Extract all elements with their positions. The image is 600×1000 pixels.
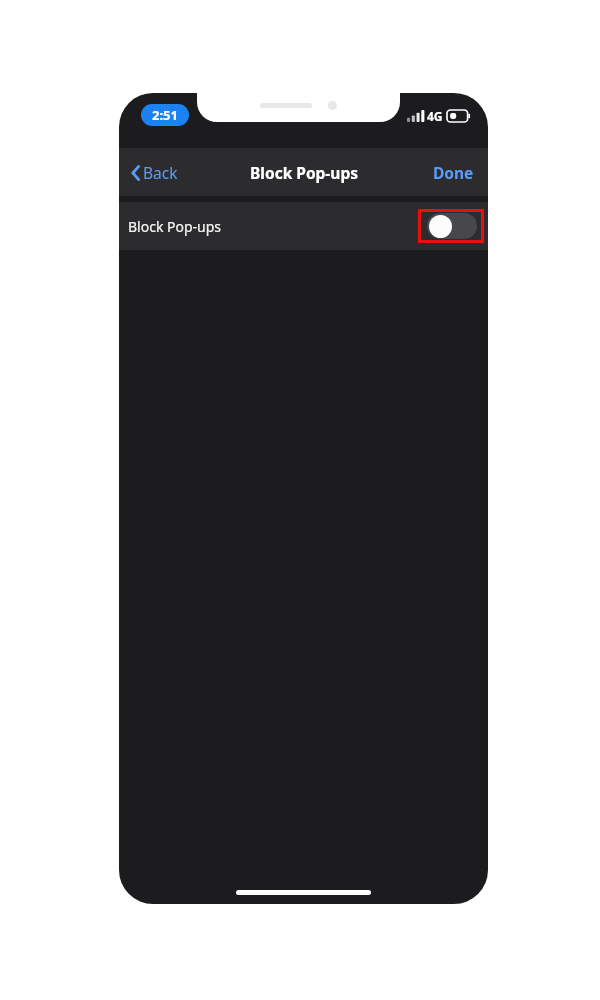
staticText: Block Pop-ups bbox=[128, 217, 222, 236]
button[interactable]: Block Pop-ups toggle, off bbox=[427, 213, 477, 239]
staticText: 4G bbox=[427, 108, 443, 124]
staticText: Done bbox=[433, 162, 474, 183]
staticText: Block Pop-ups bbox=[250, 162, 358, 183]
staticText: 2:51 bbox=[152, 106, 178, 124]
button[interactable]: Done bbox=[419, 154, 488, 191]
button[interactable]: Block Pop-ups bbox=[119, 202, 488, 250]
button[interactable]: Back bbox=[119, 154, 190, 191]
staticText: Back bbox=[143, 162, 178, 183]
